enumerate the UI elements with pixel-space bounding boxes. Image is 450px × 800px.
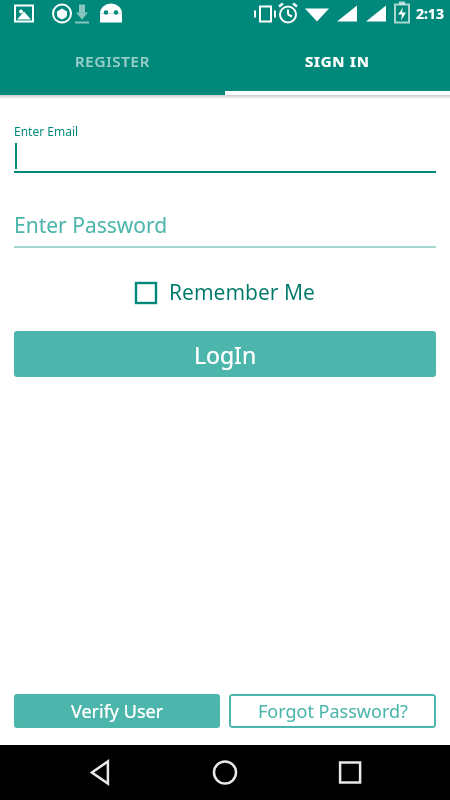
- button[interactable]: Forgot Password?: [229, 694, 436, 728]
- staticText: SIGN IN: [305, 51, 370, 71]
- staticText: 2:13: [416, 4, 444, 23]
- button[interactable]: REGISTER: [0, 27, 225, 95]
- button[interactable]: Remember Me: [135, 278, 315, 307]
- staticText: Remember Me: [169, 278, 315, 307]
- staticText: Forgot Password?: [258, 699, 408, 724]
- staticText: REGISTER: [75, 51, 150, 71]
- staticText: Verify User: [71, 699, 164, 724]
- staticText: LogIn: [194, 339, 257, 370]
- button[interactable]: LogIn: [14, 331, 436, 377]
- staticText: Enter Password: [14, 211, 168, 240]
- button[interactable]: Verify User: [14, 694, 220, 728]
- staticText: Enter Email: [14, 123, 79, 139]
- button[interactable]: SIGN IN: [225, 27, 450, 95]
